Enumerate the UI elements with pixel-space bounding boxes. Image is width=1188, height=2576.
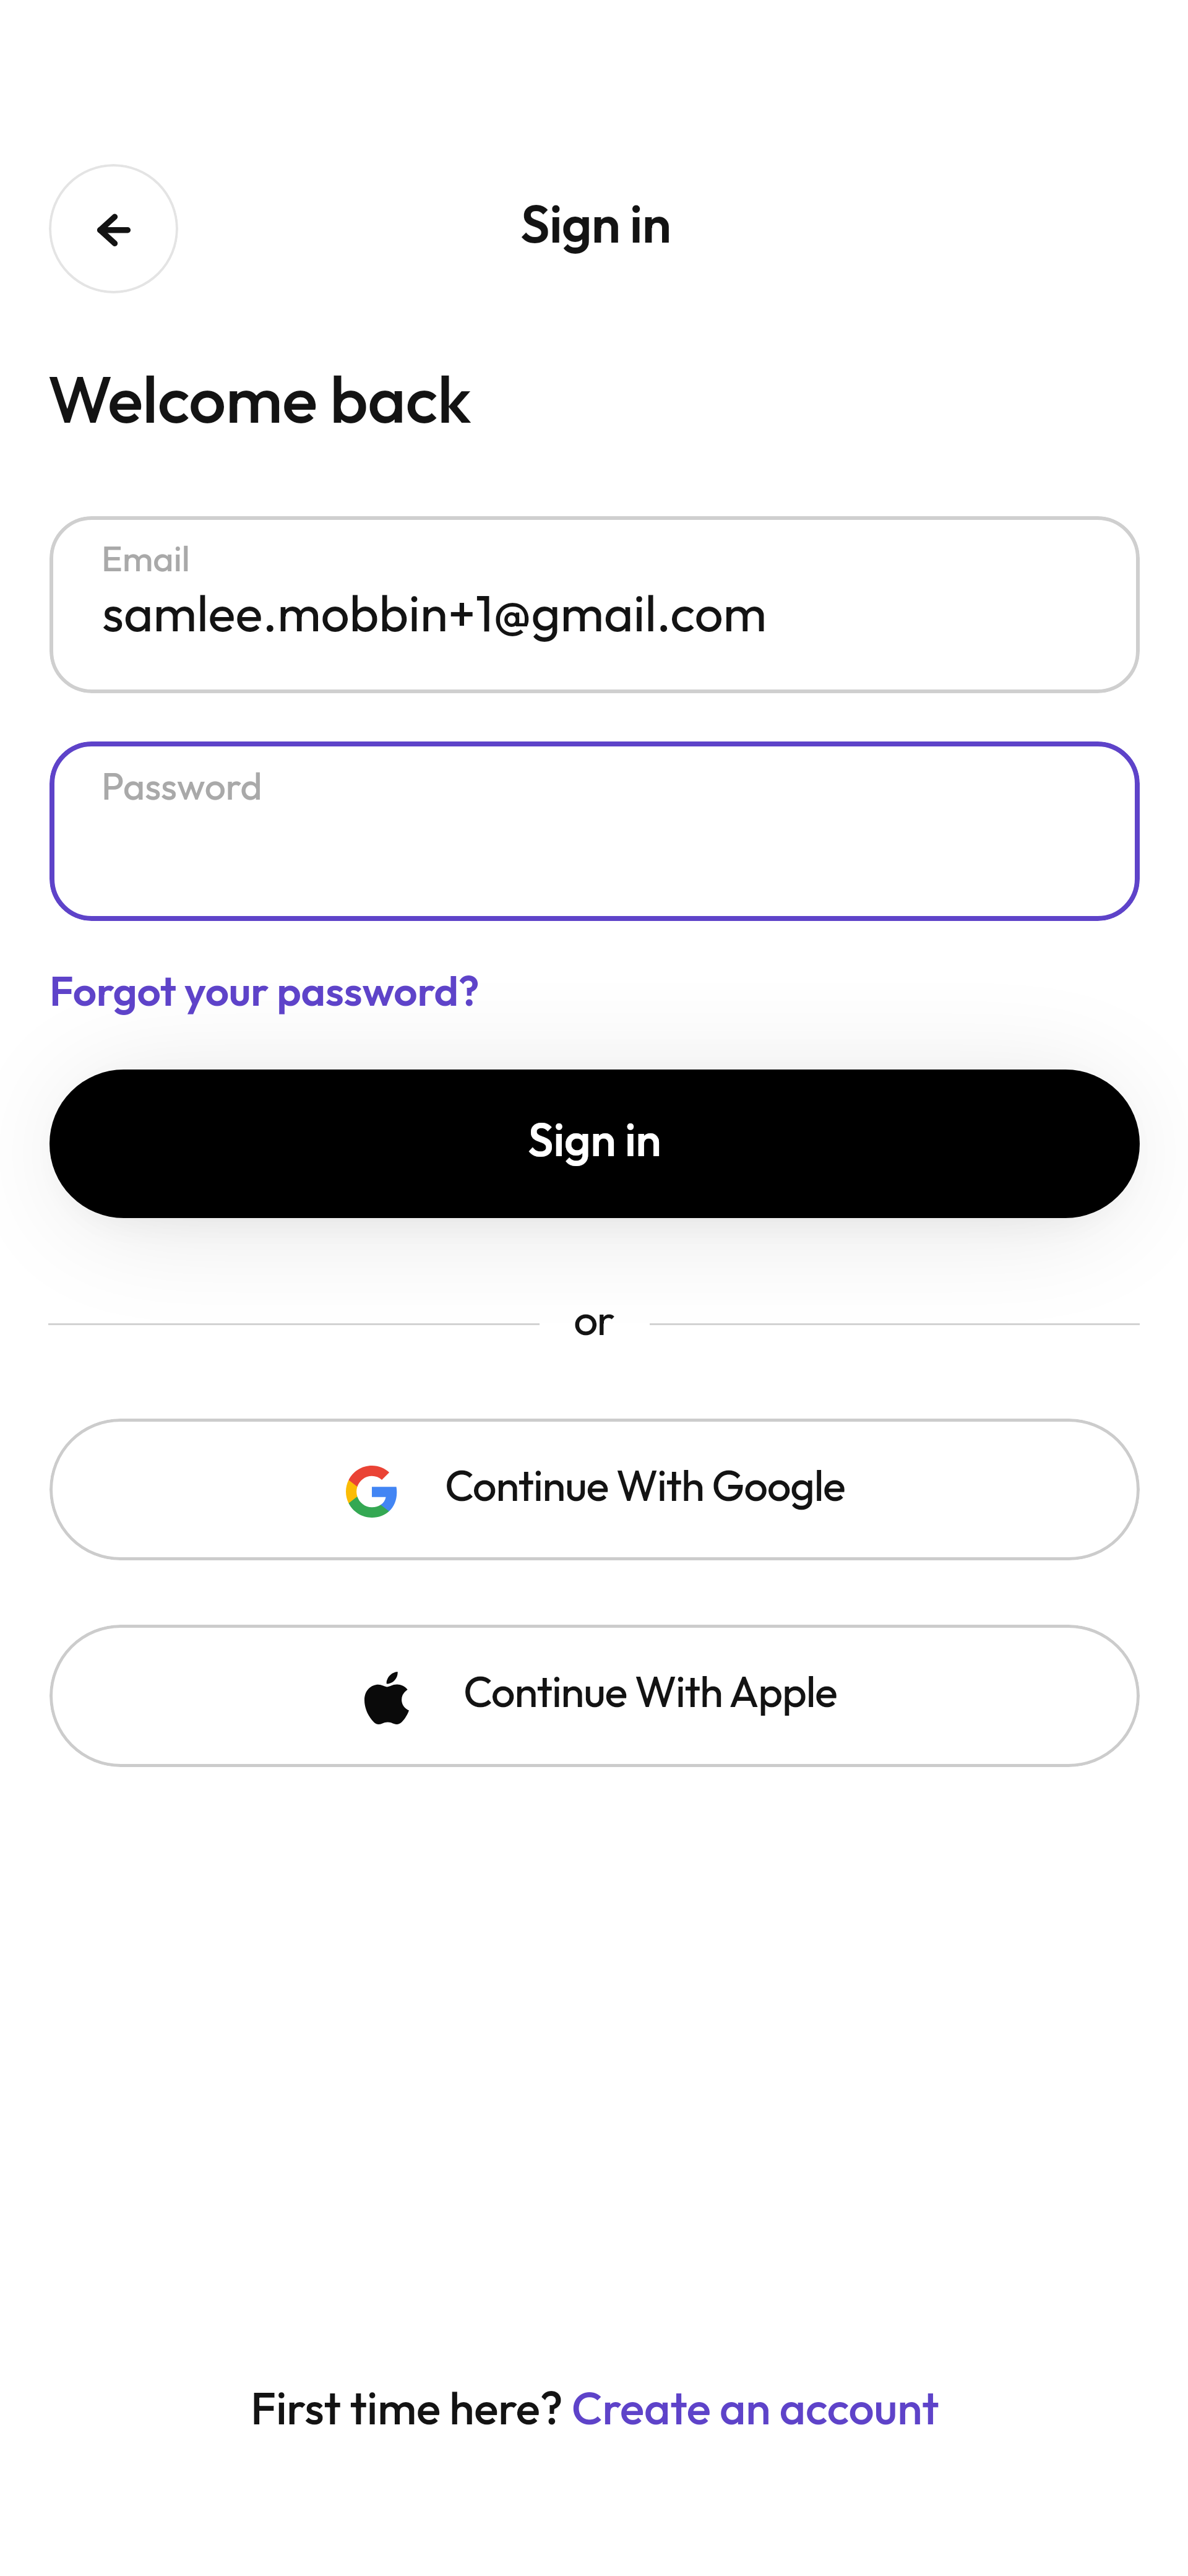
button[interactable]: Forgot your password? [49, 964, 480, 1017]
staticText: or [574, 1292, 614, 1346]
staticText: Continue With Google [445, 1458, 845, 1512]
button[interactable]: Continue With Google [49, 1419, 1140, 1560]
staticText: Forgot your password? [49, 964, 480, 1017]
staticText: Continue With Apple [463, 1664, 837, 1718]
staticText: Password [101, 762, 262, 809]
staticText: Sign in [520, 191, 671, 256]
button[interactable]: Password [49, 741, 1140, 921]
button[interactable]: Continue With Apple [49, 1625, 1140, 1767]
button[interactable]: Back [49, 164, 178, 293]
staticText: Email [101, 535, 190, 580]
staticText: samlee.mobbin+1@gmail.com [102, 581, 767, 644]
staticText: Welcome back [48, 357, 471, 439]
button[interactable]: First time here? Create an account [251, 2379, 939, 2436]
staticText: Sign in [528, 1110, 661, 1168]
button[interactable]: Email [49, 516, 1140, 693]
staticText: First time here? Create an account [251, 2379, 939, 2436]
button[interactable]: Sign in [49, 1070, 1140, 1218]
